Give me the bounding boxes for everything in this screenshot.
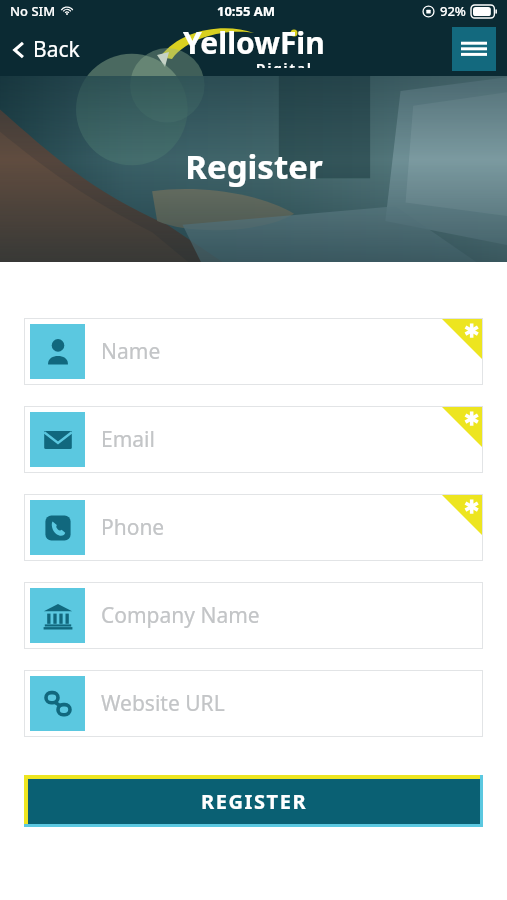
button[interactable]: REGISTER: [28, 779, 480, 824]
button[interactable]: Phone: [24, 494, 483, 561]
staticText: No SIM: [10, 2, 56, 20]
button[interactable]: Company Name: [24, 582, 483, 649]
button[interactable]: Email: [24, 406, 483, 473]
button[interactable]: Open menu: [452, 27, 496, 71]
staticText: REGISTER: [201, 788, 308, 815]
staticText: Register: [185, 144, 323, 189]
staticText: Name: [101, 337, 161, 366]
button[interactable]: Website URL: [24, 670, 483, 737]
staticText: 10:55 AM: [217, 2, 276, 20]
staticText: YellowFin: [183, 22, 325, 63]
staticText: Email: [101, 425, 155, 454]
staticText: Website URL: [101, 689, 225, 718]
staticText: Phone: [101, 513, 165, 542]
button[interactable]: Name: [24, 318, 483, 385]
staticText: Digital: [256, 59, 313, 68]
button[interactable]: Back: [0, 29, 92, 70]
staticText: Company Name: [101, 601, 260, 630]
staticText: Back: [33, 35, 80, 64]
staticText: 92%: [440, 2, 466, 20]
